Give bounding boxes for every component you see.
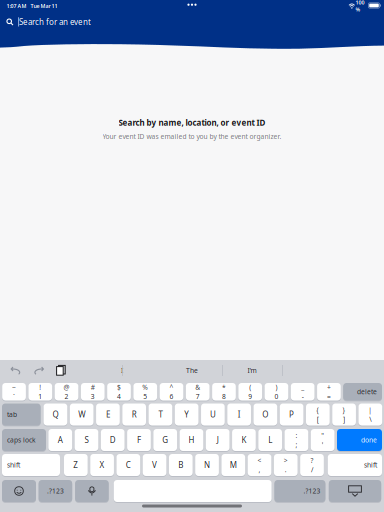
button[interactable]: Z — [64, 454, 88, 476]
button[interactable]: tab — [2, 403, 41, 425]
button[interactable]: Emoji — [2, 480, 36, 502]
staticText: V — [152, 460, 157, 470]
button[interactable]: caps lock — [2, 429, 46, 451]
staticText: Y — [184, 409, 189, 420]
button[interactable]: K — [232, 429, 256, 451]
button[interactable]: , — [248, 454, 271, 476]
button[interactable]: .?123 — [274, 480, 325, 502]
button[interactable]: C — [116, 454, 140, 476]
staticText: / — [311, 465, 313, 474]
button[interactable]: 7 — [186, 383, 210, 400]
staticText: ] — [343, 415, 345, 424]
button[interactable]: \ — [358, 403, 382, 425]
button[interactable]: Y — [175, 403, 198, 425]
button[interactable]: Shift — [2, 454, 60, 476]
button[interactable]: [ — [306, 403, 330, 425]
staticText: K — [241, 435, 246, 445]
staticText: - — [302, 392, 304, 401]
button[interactable]: Hide keyboard — [329, 480, 381, 502]
button[interactable]: ; — [285, 429, 308, 451]
button[interactable]: A — [48, 429, 72, 451]
button[interactable]: H — [180, 429, 203, 451]
button[interactable]: 2 — [55, 383, 78, 400]
button[interactable]: Paste — [56, 365, 66, 376]
staticText: $ — [117, 383, 121, 391]
staticText: S — [84, 435, 88, 445]
button[interactable]: M — [221, 454, 245, 476]
button[interactable]: 1 — [28, 383, 52, 400]
button[interactable]: B — [169, 454, 193, 476]
button[interactable]: - — [291, 383, 314, 400]
button[interactable]: 6 — [160, 383, 183, 400]
button[interactable]: 5 — [133, 383, 157, 400]
button[interactable]: done — [337, 429, 382, 451]
staticText: F — [137, 435, 141, 445]
button[interactable]: L — [258, 429, 282, 451]
staticText: } — [343, 405, 346, 414]
button[interactable]: N — [195, 454, 219, 476]
button[interactable]: W — [70, 403, 93, 425]
button[interactable]: I — [227, 403, 251, 425]
button[interactable]: ] — [332, 403, 356, 425]
staticText: L — [268, 435, 272, 445]
staticText: = — [327, 392, 331, 401]
button[interactable]: Shift — [328, 454, 382, 476]
button[interactable]: P — [280, 403, 303, 425]
button[interactable]: space — [114, 480, 272, 502]
staticText: ^ — [169, 383, 173, 391]
button[interactable]: 9 — [238, 383, 262, 400]
staticText: I'm — [247, 366, 256, 375]
button[interactable]: 3 — [81, 383, 105, 400]
button[interactable]: R — [122, 403, 146, 425]
staticText: > — [284, 456, 288, 465]
button[interactable]: delete — [343, 383, 382, 400]
button[interactable]: T — [149, 403, 172, 425]
button[interactable]: Undo — [11, 365, 22, 376]
button[interactable]: = — [317, 383, 341, 400]
staticText: Z — [73, 460, 78, 470]
button[interactable]: .?123 — [39, 480, 72, 502]
staticText: 0 — [274, 392, 278, 401]
staticText: ' — [322, 440, 324, 449]
button[interactable]: D — [101, 429, 125, 451]
button[interactable]: ` — [2, 383, 26, 400]
button[interactable]: U — [201, 403, 225, 425]
staticText: U — [210, 409, 216, 420]
button[interactable]: 0 — [265, 383, 288, 400]
button[interactable]: V — [143, 454, 166, 476]
button[interactable]: / — [300, 454, 324, 476]
button[interactable]: 8 — [212, 383, 236, 400]
button[interactable]: The — [164, 360, 220, 381]
staticText: N — [204, 460, 210, 470]
button[interactable]: X — [90, 454, 114, 476]
button[interactable]: 4 — [107, 383, 131, 400]
staticText: ` — [13, 392, 15, 401]
button[interactable]: I'm — [224, 360, 280, 381]
button[interactable]: J — [206, 429, 229, 451]
staticText: 1:07 AM — [7, 2, 27, 9]
staticText: H — [188, 435, 194, 445]
staticText: shift — [364, 461, 377, 469]
button[interactable]: ' — [311, 429, 334, 451]
button[interactable]: O — [253, 403, 277, 425]
button[interactable]: S — [75, 429, 98, 451]
staticText: Q — [52, 409, 58, 420]
staticText: I — [238, 409, 241, 420]
staticText: 1 — [38, 392, 42, 401]
button[interactable]: E — [96, 403, 120, 425]
button[interactable]: Redo — [33, 365, 44, 376]
staticText: Your event ID was emailed to you by the … — [102, 132, 281, 141]
button[interactable]: Q — [44, 403, 67, 425]
staticText: # — [91, 383, 95, 391]
staticText: * — [222, 383, 226, 391]
button[interactable]: . — [274, 454, 298, 476]
staticText: ( — [249, 383, 251, 391]
staticText: 4 — [117, 392, 121, 401]
staticText: tab — [7, 410, 17, 419]
button[interactable]: I — [96, 360, 148, 381]
button[interactable]: Search for an event — [0, 14, 384, 30]
button[interactable]: G — [153, 429, 177, 451]
button[interactable]: F — [127, 429, 151, 451]
button[interactable]: Dictation — [75, 480, 109, 502]
staticText: R — [132, 409, 137, 420]
